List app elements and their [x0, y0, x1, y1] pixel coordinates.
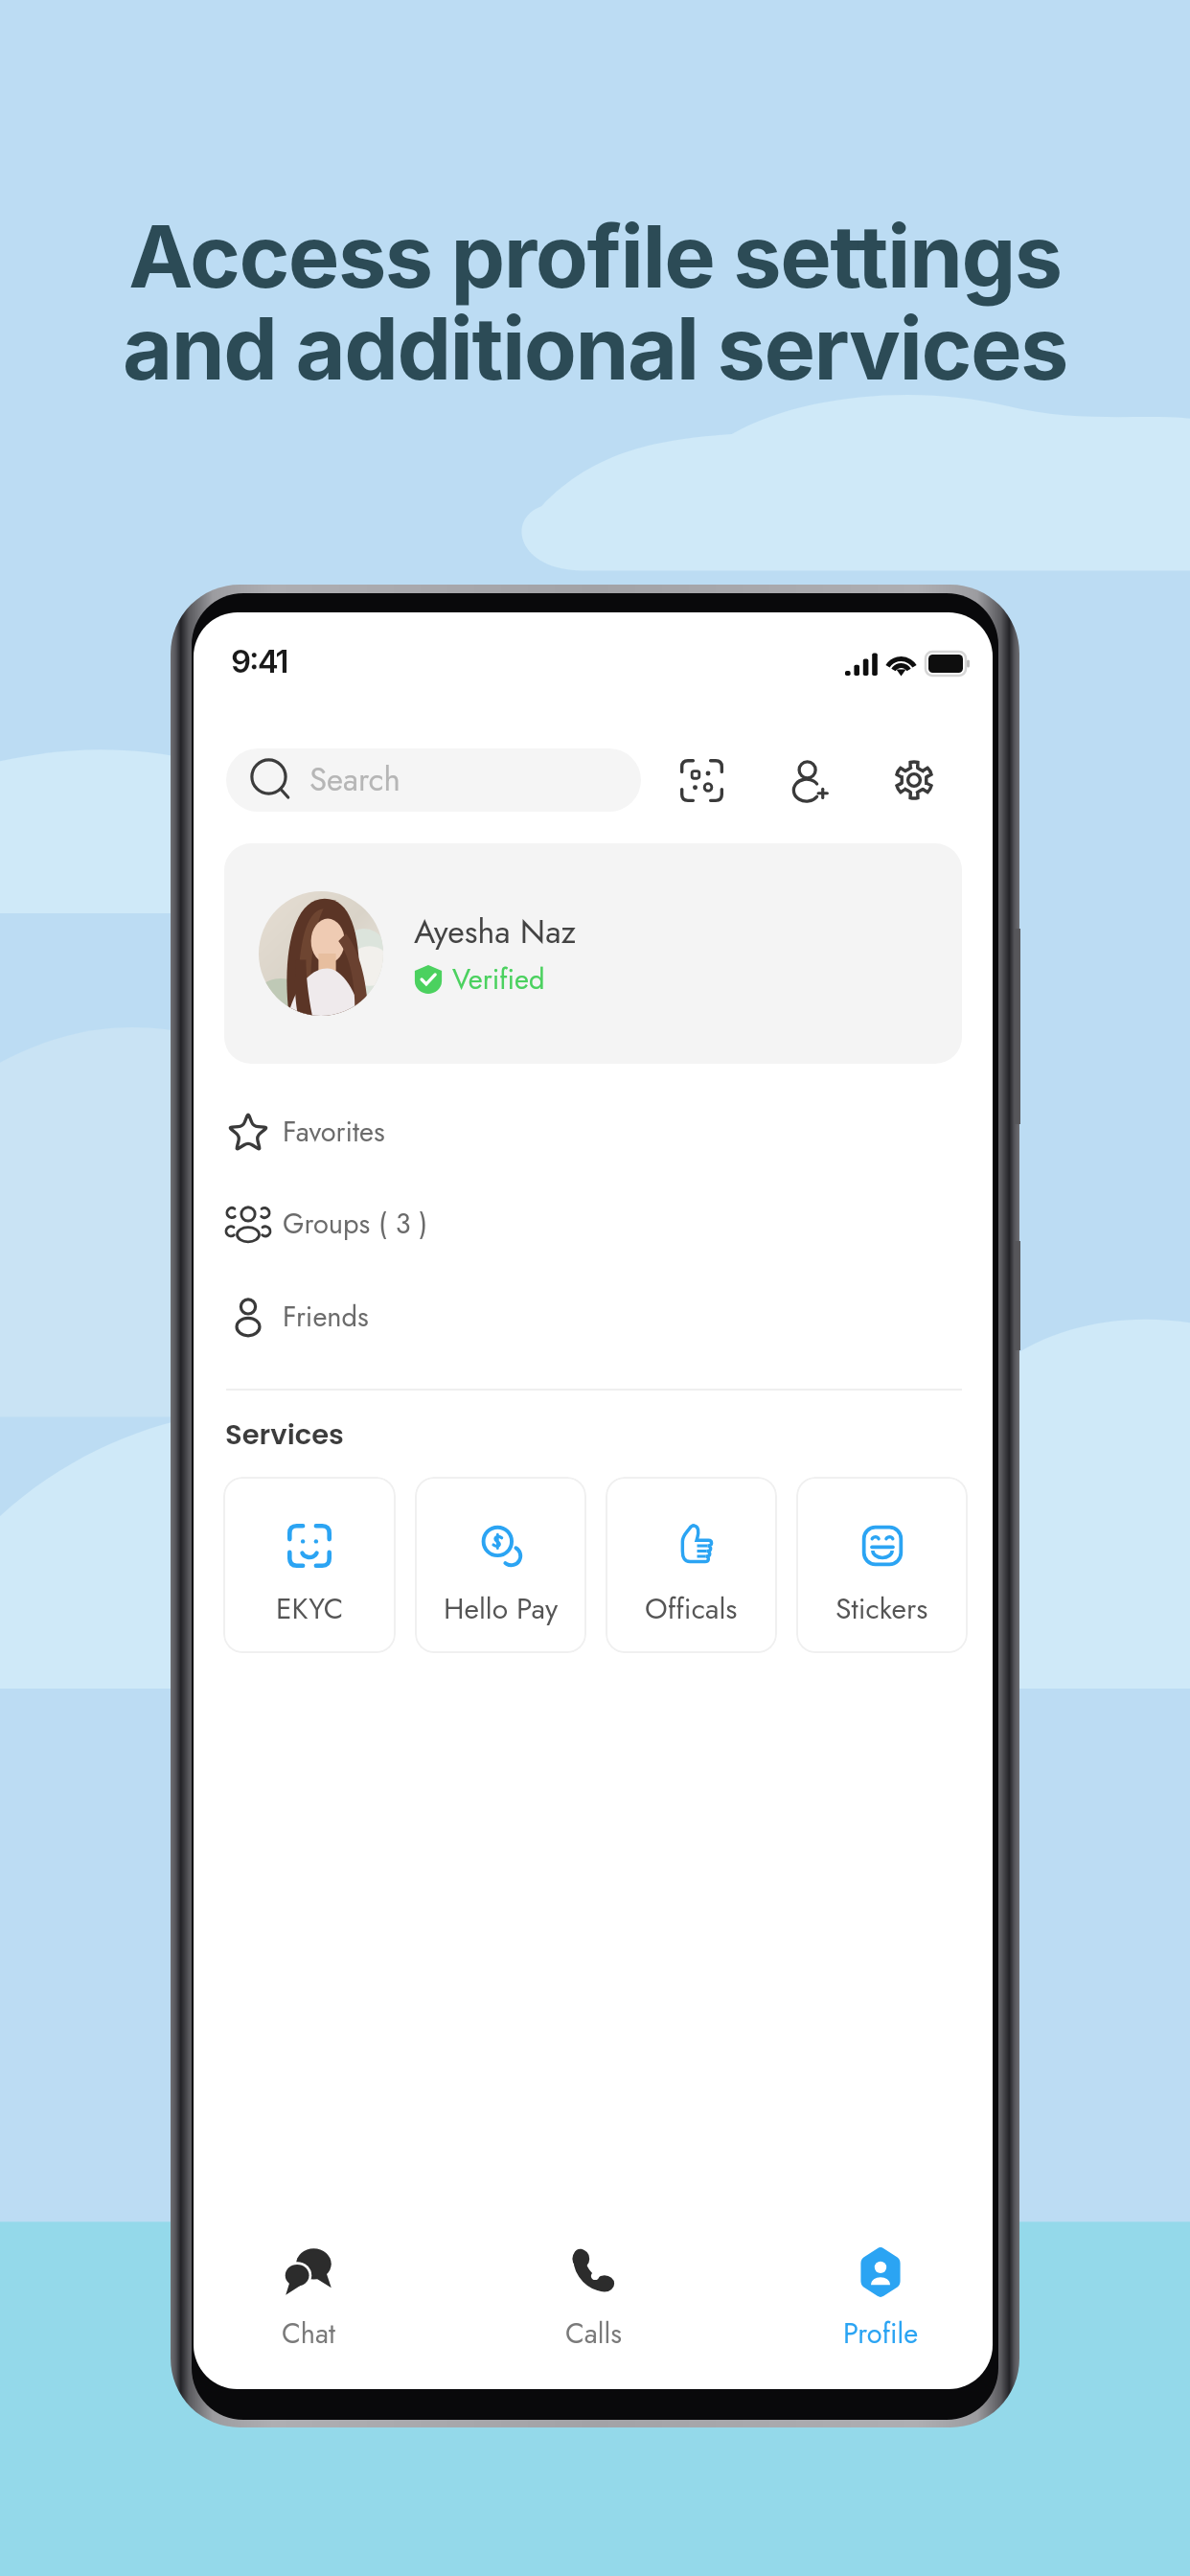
staticText: Calls: [565, 2313, 622, 2354]
staticText: 9:41: [231, 642, 287, 680]
button[interactable]: Add contact: [770, 742, 847, 818]
button[interactable]: EKYC: [223, 1477, 396, 1653]
button[interactable]: Hello Pay: [415, 1477, 586, 1653]
staticText: Friends: [283, 1297, 369, 1337]
staticText: Stickers: [835, 1588, 928, 1629]
staticText: Officals: [645, 1588, 738, 1629]
staticText: Profile: [843, 2313, 919, 2354]
button[interactable]: Settings: [876, 742, 952, 818]
staticText: EKYC: [276, 1588, 344, 1629]
staticText: Access profile settings and additional s…: [0, 204, 1190, 401]
staticText: Ayesha Naz: [414, 908, 577, 955]
button[interactable]: Scan QR code: [663, 742, 740, 818]
staticText: Hello Pay: [444, 1588, 559, 1629]
staticText: Search: [309, 757, 400, 803]
staticText: Services: [225, 1415, 344, 1455]
button[interactable]: Officals: [606, 1477, 777, 1653]
button[interactable]: Friends: [194, 1271, 993, 1363]
button[interactable]: Favorites: [194, 1086, 993, 1178]
staticText: Chat: [282, 2313, 335, 2354]
staticText: Verified: [452, 959, 545, 1000]
button[interactable]: Stickers: [796, 1477, 968, 1653]
button[interactable]: Profile: [794, 2233, 967, 2377]
button[interactable]: Calls: [507, 2233, 679, 2377]
staticText: Favorites: [283, 1112, 385, 1152]
button[interactable]: Ayesha Naz: [224, 843, 962, 1064]
staticText: Groups ( 3 ): [283, 1204, 428, 1244]
button[interactable]: Search: [226, 748, 641, 812]
button[interactable]: Chat: [222, 2233, 395, 2377]
button[interactable]: Groups ( 3 ): [194, 1178, 993, 1270]
